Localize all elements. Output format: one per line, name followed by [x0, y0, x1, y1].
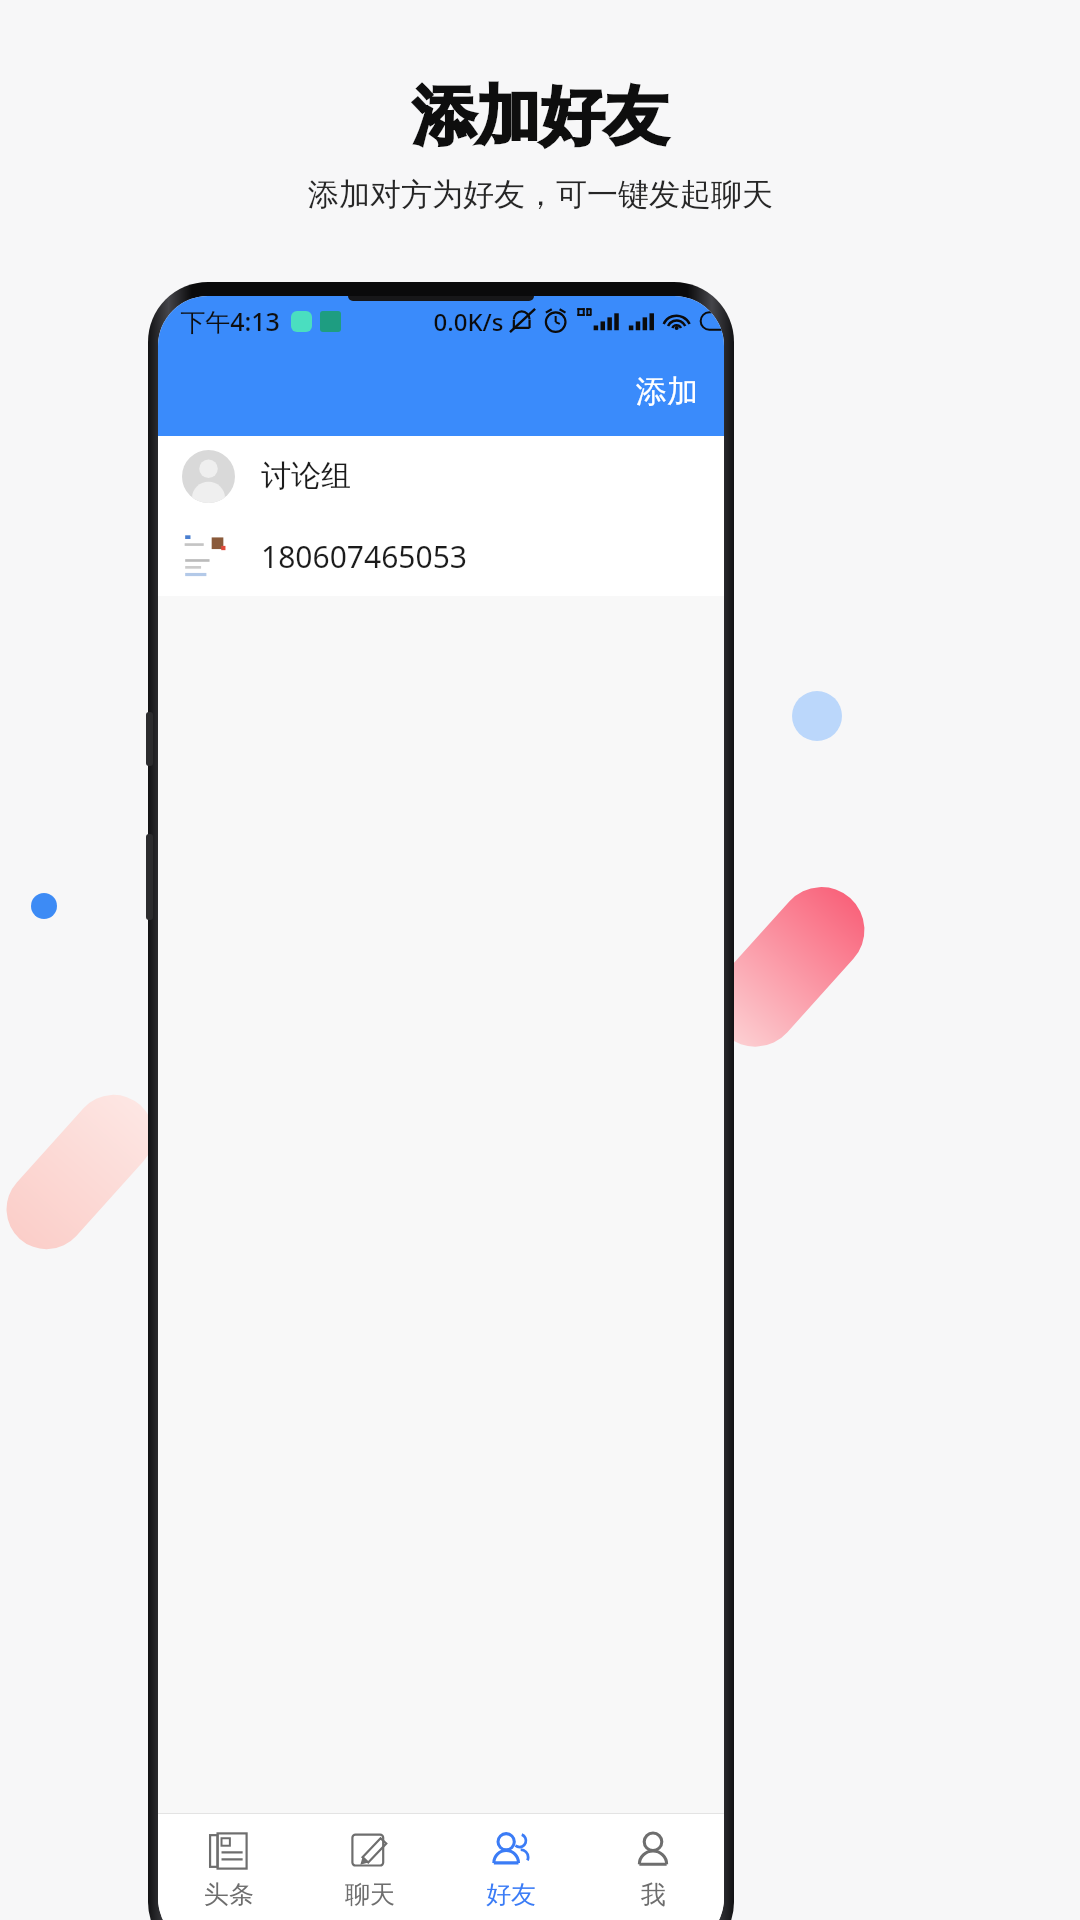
button[interactable]: 讨论组 — [158, 436, 724, 516]
other: 我 — [631, 1829, 675, 1873]
staticText: 我 — [641, 1879, 666, 1910]
staticText: 下午4:13 — [180, 304, 280, 338]
other: 好友 — [489, 1829, 533, 1873]
button[interactable]: 180607465053 — [158, 516, 724, 596]
button[interactable]: 添加 — [614, 348, 720, 434]
staticText: 0.0K/s — [433, 305, 504, 338]
staticText: 好友 — [486, 1879, 536, 1910]
staticText: 聊天 — [345, 1879, 395, 1910]
staticText: 添加好友 — [412, 76, 668, 157]
staticText: 头条 — [204, 1879, 254, 1910]
staticText: 添加 — [636, 372, 698, 411]
staticText: 180607465053 — [261, 536, 467, 577]
staticText: 讨论组 — [261, 457, 351, 495]
other: 聊天 — [348, 1829, 392, 1873]
other: 头条 — [207, 1829, 251, 1873]
button[interactable]: 聊天 — [299, 1814, 440, 1920]
button[interactable]: 我 — [582, 1814, 724, 1920]
button[interactable]: 头条 — [158, 1814, 299, 1920]
staticText: 添加对方为好友，可一键发起聊天 — [308, 175, 773, 214]
button[interactable]: 好友 — [440, 1814, 582, 1920]
